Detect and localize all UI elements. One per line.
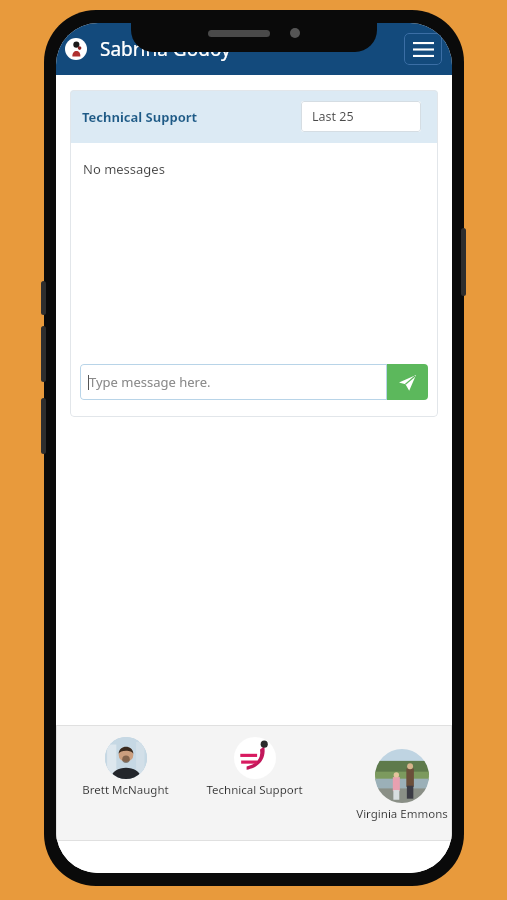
- staticText: Technical Support: [206, 782, 303, 798]
- staticText: Virginia Emmons: [356, 806, 448, 822]
- staticText: Brett McNaught: [82, 782, 169, 798]
- button[interactable]: Technical Support: [206, 737, 303, 798]
- button[interactable]: Send: [387, 364, 428, 400]
- button[interactable]: Type message here.: [80, 364, 387, 400]
- staticText: Last 25: [312, 108, 354, 125]
- button[interactable]: Menu: [404, 33, 442, 65]
- staticText: No messages: [83, 160, 165, 178]
- staticText: Sabrina Godoy: [100, 36, 231, 62]
- button[interactable]: Virginia Emmons: [356, 749, 448, 822]
- button[interactable]: Brett McNaught: [82, 737, 169, 798]
- staticText: Type message here.: [89, 373, 211, 391]
- staticText: Technical Support: [82, 108, 198, 126]
- button[interactable]: Educate Tomorrow logo: [65, 38, 87, 60]
- button[interactable]: Last 25: [301, 101, 421, 132]
